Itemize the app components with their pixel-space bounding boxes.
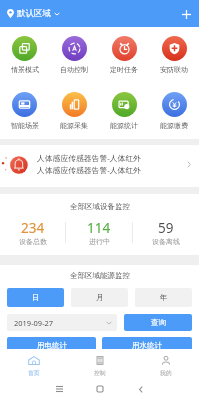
staticText: 控制 xyxy=(94,369,106,376)
staticText: 首页 xyxy=(28,369,40,376)
staticText: 全部区域能源监控 xyxy=(70,271,130,280)
button[interactable]: Add xyxy=(175,3,197,25)
button[interactable]: 默认区域 xyxy=(0,5,64,22)
button[interactable]: 查询 xyxy=(124,314,192,331)
staticText: 定时任务 xyxy=(110,65,138,74)
button[interactable]: 能源缴费 xyxy=(149,92,199,130)
staticText: 情景模式 xyxy=(11,65,39,74)
button[interactable]: Recent apps xyxy=(48,378,70,400)
button[interactable]: 首页 xyxy=(0,349,67,378)
staticText: 进行中 xyxy=(89,237,110,246)
button[interactable]: 月 xyxy=(71,288,128,307)
button[interactable]: 234 xyxy=(0,219,65,246)
staticText: 全部区域设备监控 xyxy=(70,202,130,211)
button[interactable]: 114 xyxy=(66,219,132,246)
button[interactable]: 用电统计 xyxy=(7,337,96,354)
staticText: 安防联动 xyxy=(160,65,188,74)
staticText: 234 xyxy=(21,219,45,237)
button[interactable]: 年 xyxy=(135,288,192,307)
button[interactable]: 日 xyxy=(7,288,64,307)
button[interactable]: Home xyxy=(89,378,111,400)
staticText: 能源缴费 xyxy=(160,121,188,130)
button[interactable]: 我的 xyxy=(133,349,199,378)
button[interactable]: 能源统计 xyxy=(99,92,149,130)
button[interactable]: 能源采集 xyxy=(49,92,99,130)
button[interactable]: 智能场景 xyxy=(0,92,49,130)
staticText: 日 xyxy=(32,293,40,302)
button[interactable]: 用水统计 xyxy=(102,337,192,354)
staticText: 人体感应传感器告警-人体红外 xyxy=(37,153,141,164)
staticText: 自动控制 xyxy=(60,65,88,74)
staticText: 能源统计 xyxy=(110,121,138,130)
staticText: 用电统计 xyxy=(37,341,67,350)
staticText: 我的 xyxy=(160,369,172,376)
button[interactable]: 安防联动 xyxy=(149,36,199,74)
staticText: 用水统计 xyxy=(132,341,162,350)
staticText: 能源采集 xyxy=(60,121,88,130)
button[interactable]: 定时任务 xyxy=(99,36,149,74)
button[interactable]: 人体感应传感器告警-人体红外 xyxy=(0,145,199,187)
button[interactable]: 自动控制 xyxy=(49,36,99,74)
staticText: 设备总数 xyxy=(19,237,47,246)
button[interactable]: 2019-09-27 xyxy=(7,314,117,331)
staticText: 查询 xyxy=(151,318,166,327)
button[interactable]: 情景模式 xyxy=(0,36,49,74)
button[interactable]: 控制 xyxy=(67,349,133,378)
staticText: 人体感应传感器告警-人体红外 xyxy=(37,165,141,176)
staticText: 月 xyxy=(96,293,104,302)
button[interactable]: 59 xyxy=(133,219,199,246)
staticText: 114 xyxy=(87,219,111,237)
staticText: 59 xyxy=(158,219,174,237)
staticText: 设备离线 xyxy=(152,237,180,246)
staticText: 2019-09-27 xyxy=(14,318,54,328)
staticText: 默认区域 xyxy=(17,8,51,19)
staticText: 智能场景 xyxy=(11,121,39,130)
staticText: 年 xyxy=(160,293,168,302)
button[interactable]: Back xyxy=(130,378,152,400)
